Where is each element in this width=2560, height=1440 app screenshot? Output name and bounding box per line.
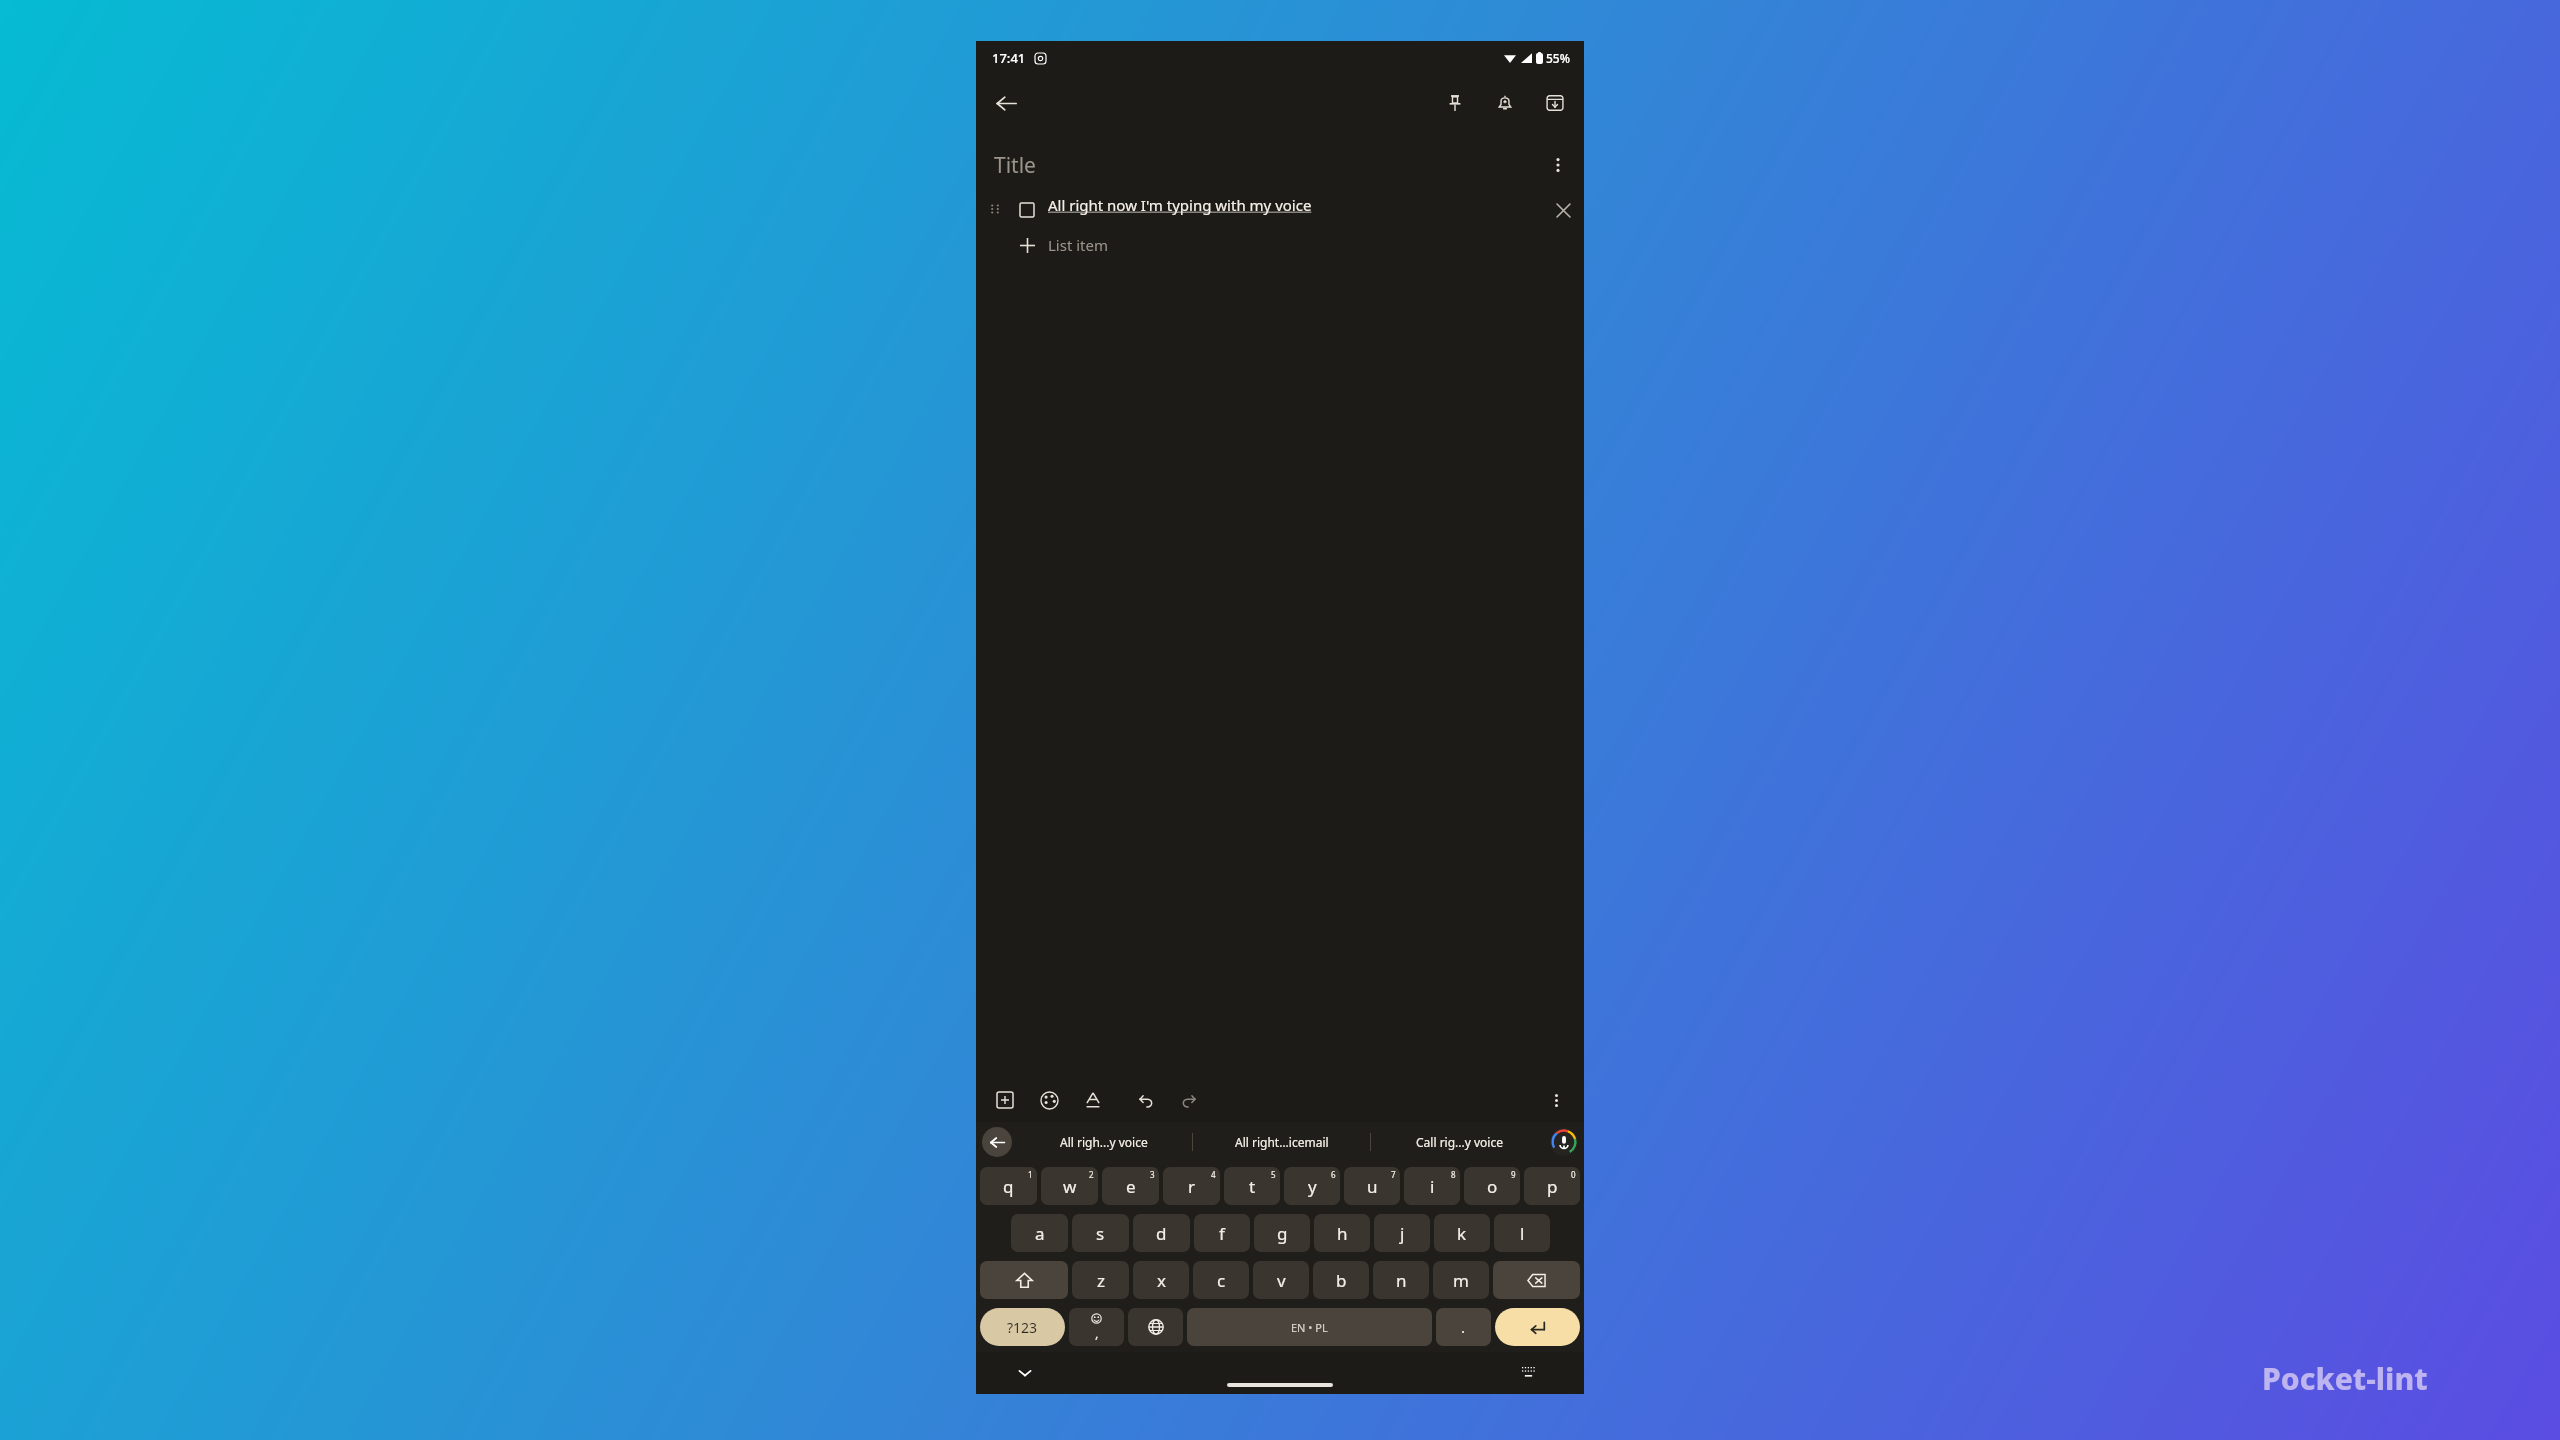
staticText: 1 xyxy=(1028,1169,1033,1180)
button[interactable]: u xyxy=(1344,1167,1400,1205)
button[interactable]: Pin xyxy=(1436,84,1474,122)
button[interactable]: Back xyxy=(984,81,1028,125)
button[interactable]: EN • PL xyxy=(1187,1308,1432,1346)
button[interactable]: h xyxy=(1314,1214,1370,1252)
button[interactable]: Hide keyboard xyxy=(1010,1358,1040,1388)
staticText: g xyxy=(1277,1222,1288,1245)
button[interactable]: Shift xyxy=(980,1261,1068,1299)
staticText: EN • PL xyxy=(1291,1320,1328,1335)
staticText: f xyxy=(1219,1222,1225,1245)
button[interactable]: Call rig...y voice xyxy=(1371,1122,1548,1162)
staticText: 9 xyxy=(1511,1169,1516,1180)
button[interactable]: b xyxy=(1313,1261,1369,1299)
button[interactable]: s xyxy=(1072,1214,1129,1252)
button[interactable]: p xyxy=(1524,1167,1580,1205)
button[interactable]: j xyxy=(1374,1214,1430,1252)
button[interactable]: Undo xyxy=(1126,1081,1164,1119)
button[interactable]: v xyxy=(1253,1261,1309,1299)
staticText: m xyxy=(1453,1269,1469,1292)
button[interactable]: x xyxy=(1133,1261,1189,1299)
staticText: t xyxy=(1249,1175,1256,1198)
staticText: a xyxy=(1035,1222,1045,1245)
button[interactable]: Back xyxy=(982,1127,1012,1157)
staticText: h xyxy=(1337,1222,1348,1245)
button[interactable]: t xyxy=(1224,1167,1280,1205)
button[interactable]: f xyxy=(1194,1214,1250,1252)
staticText: 0 xyxy=(1571,1169,1576,1180)
staticText: p xyxy=(1547,1175,1558,1198)
button[interactable]: List item xyxy=(986,225,1584,265)
staticText: r xyxy=(1188,1175,1196,1198)
staticText: d xyxy=(1156,1222,1167,1245)
staticText: List item xyxy=(1048,235,1109,255)
staticText: All right...icemail xyxy=(1235,1134,1329,1150)
button[interactable]: d xyxy=(1133,1214,1190,1252)
button[interactable]: o xyxy=(1464,1167,1520,1205)
button[interactable]: Emoji and comma xyxy=(1069,1308,1124,1346)
button[interactable]: Voice input xyxy=(1548,1126,1580,1158)
staticText: v xyxy=(1277,1269,1286,1292)
button[interactable]: Add xyxy=(986,1081,1024,1119)
button[interactable]: Backspace xyxy=(1493,1261,1580,1299)
button[interactable]: Checkbox xyxy=(1014,197,1040,223)
staticText: y xyxy=(1308,1175,1317,1198)
staticText: All right now I'm typing with my voice xyxy=(1048,195,1548,215)
button[interactable]: q xyxy=(980,1167,1037,1205)
button[interactable]: r xyxy=(1163,1167,1220,1205)
button[interactable]: More options xyxy=(1540,147,1576,183)
staticText: e xyxy=(1126,1175,1136,1198)
staticText: j xyxy=(1400,1222,1405,1245)
button[interactable]: ?123 xyxy=(980,1308,1065,1346)
staticText: 6 xyxy=(1331,1169,1336,1180)
button[interactable]: l xyxy=(1494,1214,1550,1252)
button[interactable]: i xyxy=(1404,1167,1460,1205)
staticText: 55% xyxy=(1546,50,1570,66)
staticText: o xyxy=(1487,1175,1498,1198)
staticText: w xyxy=(1063,1175,1077,1198)
button[interactable]: Change language xyxy=(1128,1308,1183,1346)
staticText: ?123 xyxy=(1007,1318,1038,1337)
button[interactable]: c xyxy=(1193,1261,1249,1299)
button[interactable]: z xyxy=(1072,1261,1129,1299)
button[interactable]: All righ...y voice xyxy=(1016,1122,1192,1162)
staticText: 17:41 xyxy=(992,49,1026,67)
button[interactable]: k xyxy=(1434,1214,1490,1252)
staticText: 7 xyxy=(1391,1169,1396,1180)
button[interactable]: w xyxy=(1041,1167,1098,1205)
button[interactable]: Archive xyxy=(1536,84,1574,122)
staticText: Call rig...y voice xyxy=(1416,1134,1503,1150)
button[interactable]: m xyxy=(1433,1261,1489,1299)
staticText: n xyxy=(1396,1269,1407,1292)
staticText: All righ...y voice xyxy=(1060,1134,1148,1150)
button[interactable]: g xyxy=(1254,1214,1310,1252)
button[interactable]: Format xyxy=(1074,1081,1112,1119)
staticText: Title xyxy=(994,151,1036,180)
staticText: q xyxy=(1003,1175,1014,1198)
button[interactable]: Colour xyxy=(1030,1081,1068,1119)
button[interactable]: Delete item xyxy=(1548,195,1578,225)
button[interactable]: Checkbox xyxy=(986,191,1578,225)
staticText: x xyxy=(1157,1269,1166,1292)
button[interactable]: Switch keyboard xyxy=(1514,1359,1542,1387)
button[interactable]: Enter xyxy=(1495,1308,1580,1346)
button[interactable]: . xyxy=(1436,1308,1491,1346)
staticText: k xyxy=(1457,1222,1467,1245)
staticText: b xyxy=(1336,1269,1347,1292)
staticText: z xyxy=(1097,1269,1105,1292)
button[interactable]: y xyxy=(1284,1167,1340,1205)
staticText: 2 xyxy=(1089,1169,1094,1180)
button[interactable]: More xyxy=(1538,1082,1574,1118)
staticText: l xyxy=(1520,1222,1525,1245)
button[interactable]: Redo xyxy=(1170,1081,1208,1119)
staticText: Pocket-lint xyxy=(2262,1358,2428,1399)
staticText: i xyxy=(1430,1175,1435,1198)
button[interactable]: Reminder xyxy=(1486,84,1524,122)
staticText: u xyxy=(1367,1175,1378,1198)
button[interactable]: All right...icemail xyxy=(1193,1122,1370,1162)
button[interactable]: n xyxy=(1373,1261,1429,1299)
staticText: . xyxy=(1461,1317,1466,1337)
button[interactable]: e xyxy=(1102,1167,1159,1205)
staticText: c xyxy=(1217,1269,1226,1292)
button[interactable]: a xyxy=(1011,1214,1068,1252)
staticText: 5 xyxy=(1271,1169,1276,1180)
